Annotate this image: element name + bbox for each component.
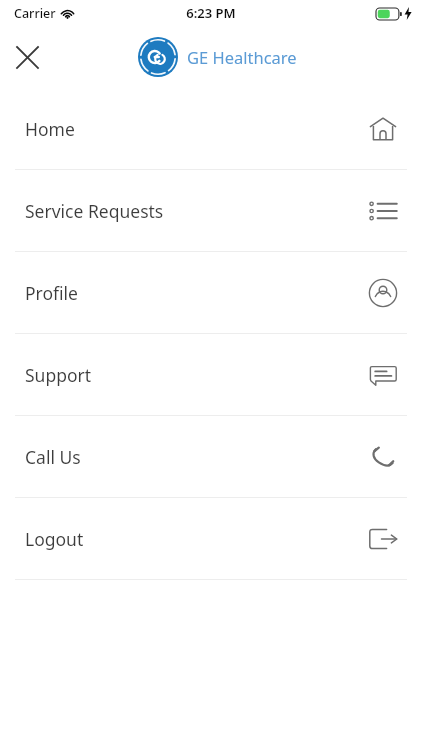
- button[interactable]: Profile: [0, 252, 422, 333]
- button[interactable]: Service Requests: [0, 170, 422, 251]
- staticText: Logout: [25, 527, 84, 551]
- staticText: Call Us: [25, 445, 81, 469]
- staticText: Carrier: [14, 5, 56, 22]
- staticText: GE Healthcare: [187, 46, 297, 68]
- button[interactable]: Logout: [0, 498, 422, 579]
- button[interactable]: Call Us: [0, 416, 422, 497]
- staticText: Service Requests: [25, 199, 164, 223]
- button[interactable]: Support: [0, 334, 422, 415]
- button[interactable]: Home: [0, 88, 422, 169]
- staticText: Home: [25, 117, 75, 141]
- staticText: Support: [25, 363, 92, 387]
- button[interactable]: Close: [6, 36, 48, 78]
- staticText: Profile: [25, 281, 78, 305]
- staticText: 6:23 PM: [186, 4, 236, 22]
